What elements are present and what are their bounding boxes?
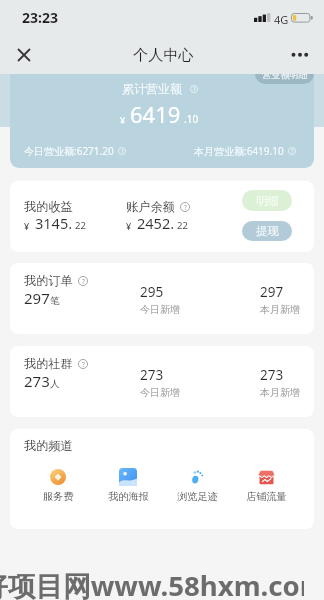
staticText: ? <box>82 360 85 369</box>
staticText: 273 <box>24 371 50 391</box>
staticText: ? <box>291 147 294 155</box>
button[interactable]: More options <box>282 36 318 72</box>
staticText: 累计营业额 <box>122 81 182 96</box>
staticText: 今日营业额:6271.20 <box>24 144 114 158</box>
staticText: 我的频道 <box>24 438 73 453</box>
staticText: 人 <box>50 378 60 390</box>
button[interactable]: 我的海报 <box>98 468 158 503</box>
staticText: .10 <box>184 112 199 126</box>
staticText: 营业额明细 <box>262 74 308 81</box>
staticText: 本月新增 <box>260 303 300 316</box>
staticText: ? <box>82 277 85 286</box>
staticText: 297 <box>24 288 50 308</box>
staticText: 6419 <box>130 99 181 129</box>
staticText: 笔 <box>50 295 60 307</box>
staticText: 我的订单 <box>24 273 73 288</box>
staticText: 4G <box>274 12 289 27</box>
button[interactable]: Close <box>6 36 42 72</box>
staticText: 服务费 <box>43 490 74 503</box>
button[interactable]: 浏览足迹 <box>167 468 227 503</box>
staticText: 账户余额 <box>126 199 175 214</box>
staticText: ? <box>193 85 196 93</box>
button[interactable]: 我的订单 <box>10 263 314 334</box>
staticText: 273 <box>140 366 164 384</box>
button[interactable]: 我的社群 <box>10 346 314 417</box>
staticText: ¥ <box>24 220 30 232</box>
button[interactable]: 营业额明细 <box>255 74 314 84</box>
staticText: 295 <box>140 283 164 301</box>
button[interactable]: 提现 <box>242 221 292 241</box>
button[interactable]: 明细 <box>242 190 292 211</box>
staticText: 23:23 <box>22 8 58 27</box>
staticText: ? <box>184 203 187 212</box>
staticText: 2452. <box>137 213 175 233</box>
staticText: 好项目网www.58hxm.com <box>0 566 304 600</box>
button[interactable]: 我的收益 <box>10 181 314 252</box>
staticText: 店铺流量 <box>246 490 287 503</box>
staticText: 3145. <box>35 213 73 233</box>
button[interactable]: 店铺流量 <box>236 468 296 503</box>
staticText: 22 <box>75 219 86 232</box>
staticText: 我的收益 <box>24 199 73 214</box>
staticText: ? <box>121 147 124 155</box>
staticText: 明细 <box>256 194 279 208</box>
staticText: 我的社群 <box>24 356 73 371</box>
button[interactable]: 我的频道 <box>10 429 314 529</box>
staticText: 297 <box>260 283 284 301</box>
staticText: 273 <box>260 366 284 384</box>
staticText: 浏览足迹 <box>177 490 218 503</box>
staticText: 本月新增 <box>260 386 300 399</box>
staticText: 今日新增 <box>140 386 180 399</box>
staticText: 提现 <box>256 224 279 238</box>
button[interactable]: 服务费 <box>28 468 88 503</box>
staticText: 我的海报 <box>108 490 149 503</box>
staticText: 本月营业额:6419.10 <box>194 144 284 158</box>
staticText: 个人中心 <box>133 45 194 64</box>
staticText: ¥ <box>126 220 132 232</box>
staticText: 今日新增 <box>140 303 180 316</box>
staticText: ¥ <box>120 114 126 126</box>
staticText: 22 <box>177 219 188 232</box>
